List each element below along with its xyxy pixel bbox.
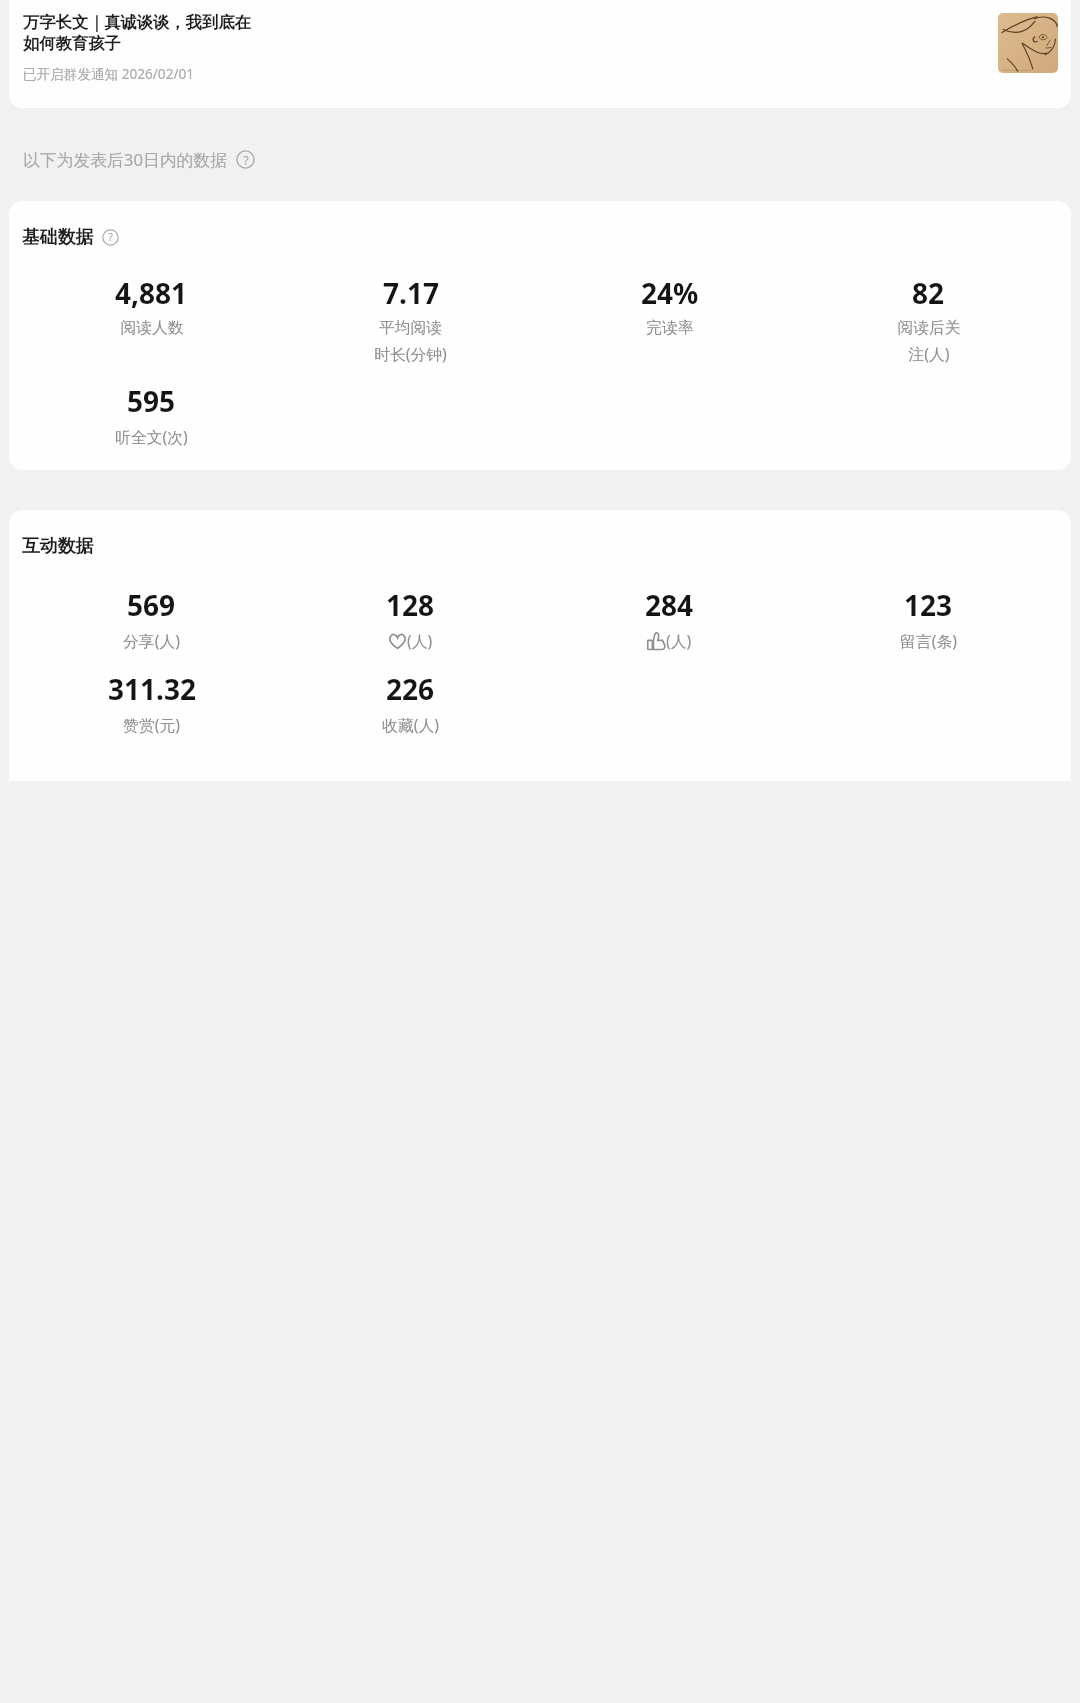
staticText: 以下为发表后30日内的数据 bbox=[23, 148, 227, 171]
staticText: 284 bbox=[645, 586, 694, 624]
staticText: 595 bbox=[127, 382, 176, 420]
staticText: 123 bbox=[904, 586, 953, 624]
other: Help bbox=[236, 150, 255, 169]
staticText: 万字长文｜真诚谈谈，我到底在 如何教育孩子 bbox=[23, 12, 251, 54]
button[interactable]: 82 bbox=[799, 274, 1058, 364]
staticText: 226 bbox=[386, 670, 435, 708]
staticText: 569 bbox=[127, 586, 176, 624]
staticText: 7.17 bbox=[383, 274, 439, 312]
staticText: 分享(人) bbox=[123, 630, 180, 652]
staticText: 听全文(次) bbox=[115, 426, 188, 448]
button[interactable]: 24% bbox=[540, 274, 799, 338]
staticText: 收藏(人) bbox=[382, 714, 439, 736]
button[interactable]: 以下为发表后30日内的数据 bbox=[23, 148, 255, 171]
staticText: 已开启群发通知 2026/02/01 bbox=[23, 64, 195, 83]
other: Article cover bbox=[998, 13, 1058, 73]
button[interactable]: 284 bbox=[540, 586, 799, 652]
button[interactable]: 4,881 bbox=[22, 274, 281, 338]
button[interactable]: 569 bbox=[22, 586, 281, 652]
staticText: ? bbox=[243, 152, 249, 168]
staticText: (人) bbox=[407, 630, 433, 652]
button[interactable]: 311.32 bbox=[22, 670, 281, 736]
staticText: 基础数据 bbox=[22, 226, 94, 248]
staticText: 赞赏(元) bbox=[123, 714, 180, 736]
button[interactable]: 123 bbox=[799, 586, 1058, 652]
staticText: 82 bbox=[912, 274, 945, 312]
button[interactable]: 互动数据 bbox=[9, 510, 1071, 781]
staticText: 留言(条) bbox=[900, 630, 957, 652]
staticText: 完读率 bbox=[646, 318, 694, 338]
other: Help bbox=[102, 229, 119, 246]
staticText: 4,881 bbox=[115, 274, 188, 312]
button[interactable]: 128 bbox=[281, 586, 540, 652]
staticText: 平均阅读 时长(分钟) bbox=[374, 318, 447, 364]
button[interactable]: 万字长文｜真诚谈谈，我到底在 如何教育孩子 bbox=[9, 0, 1071, 108]
staticText: 24% bbox=[641, 274, 699, 312]
other: Likes bbox=[388, 632, 407, 651]
staticText: 互动数据 bbox=[22, 535, 94, 557]
button[interactable]: 7.17 bbox=[281, 274, 540, 364]
staticText: 128 bbox=[386, 586, 435, 624]
staticText: 阅读人数 bbox=[120, 318, 184, 338]
staticText: (人) bbox=[666, 630, 692, 652]
other: Thumbs up bbox=[647, 632, 666, 651]
button[interactable]: 226 bbox=[281, 670, 540, 736]
button[interactable]: 595 bbox=[22, 382, 281, 448]
staticText: ? bbox=[108, 230, 113, 245]
button[interactable]: 基础数据 bbox=[9, 201, 1071, 470]
staticText: 311.32 bbox=[108, 670, 196, 708]
staticText: 阅读后关 注(人) bbox=[897, 318, 961, 364]
